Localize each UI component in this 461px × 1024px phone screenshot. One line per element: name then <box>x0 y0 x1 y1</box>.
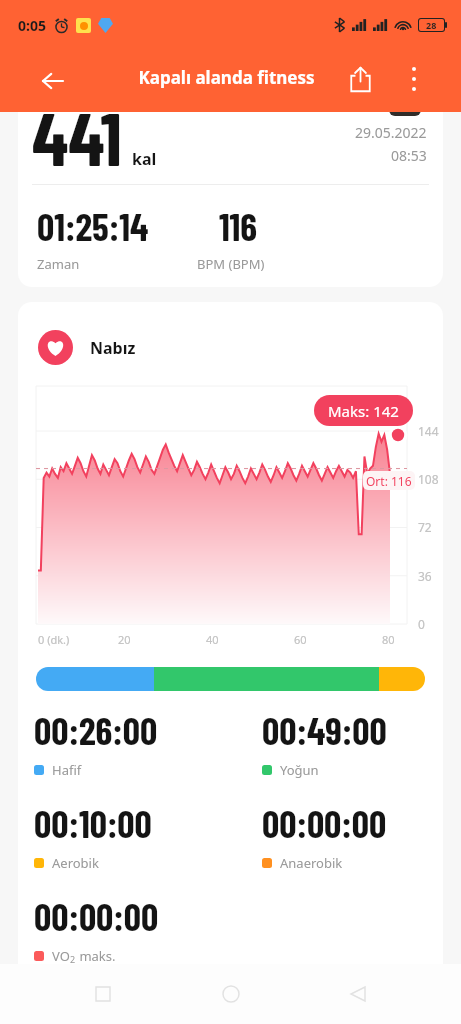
staticText: 00:26:00 <box>34 707 158 753</box>
staticText: 40 <box>206 632 219 647</box>
staticText: 116 <box>219 203 258 249</box>
button[interactable]: Back <box>25 53 81 109</box>
button[interactable]: Recents <box>79 970 127 1018</box>
staticText: Ort: 116 <box>366 473 412 489</box>
button[interactable]: More options <box>390 55 438 103</box>
staticText: 72 <box>418 519 432 535</box>
staticText: 08:53 <box>391 146 427 165</box>
button[interactable]: Home <box>207 970 255 1018</box>
staticText: 2 <box>70 953 76 965</box>
staticText: 01:25:14 <box>37 203 149 249</box>
staticText: maks. <box>76 947 116 965</box>
staticText: 29.05.2022 <box>355 123 427 142</box>
staticText: 0 (dk.) <box>38 632 70 647</box>
staticText: 0:05 <box>18 16 46 35</box>
staticText: 60 <box>294 632 307 647</box>
button[interactable]: Back <box>334 970 382 1018</box>
button[interactable]: Share <box>336 55 384 103</box>
staticText: BPM (BPM) <box>197 255 265 273</box>
staticText: Anaerobik <box>280 854 343 872</box>
staticText: VO <box>52 947 70 965</box>
staticText: Nabız <box>90 337 136 359</box>
staticText: Hafif <box>52 761 82 779</box>
staticText: 00:10:00 <box>34 800 152 846</box>
staticText: Maks: 142 <box>328 401 399 421</box>
staticText: Yoğun <box>280 761 319 779</box>
staticText: Aerobik <box>52 854 99 872</box>
staticText: 28 <box>426 19 437 31</box>
staticText: Kapalı alanda fitness <box>138 66 315 89</box>
staticText: 20 <box>118 632 131 647</box>
staticText: 441 <box>32 91 122 181</box>
staticText: 00:00:00 <box>262 800 387 846</box>
staticText: 0 <box>418 616 425 632</box>
staticText: Zaman <box>37 255 80 273</box>
staticText: 108 <box>418 471 439 487</box>
staticText: kal <box>132 148 157 170</box>
staticText: 00:49:00 <box>262 707 387 753</box>
staticText: 36 <box>418 568 432 584</box>
staticText: 80 <box>382 632 395 647</box>
staticText: 00:00:00 <box>34 893 159 939</box>
staticText: 144 <box>418 423 439 439</box>
